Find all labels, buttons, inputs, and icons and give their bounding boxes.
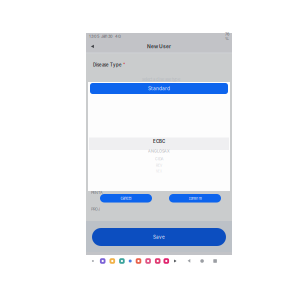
button[interactable]: App bbox=[145, 258, 151, 264]
staticText: PENTA bbox=[91, 190, 103, 195]
button[interactable]: cancel bbox=[100, 194, 152, 202]
button[interactable]: Back bbox=[87, 41, 98, 51]
button[interactable]: App bbox=[109, 258, 115, 264]
staticText: NEX bbox=[156, 170, 162, 173]
button[interactable]: App bbox=[136, 258, 141, 264]
staticText: PROJ bbox=[91, 207, 100, 211]
staticText: ECBC bbox=[153, 139, 165, 144]
staticText: select a disease type bbox=[142, 77, 180, 82]
staticText: 76% bbox=[225, 32, 229, 41]
button[interactable]: Home bbox=[198, 256, 206, 266]
button[interactable]: Save bbox=[92, 228, 226, 246]
staticText: 13:05 Jan 30 4G bbox=[89, 34, 121, 39]
staticText: CIDA bbox=[155, 157, 163, 161]
button[interactable]: App bbox=[100, 258, 105, 264]
staticText: * bbox=[123, 62, 125, 68]
staticText: Save bbox=[153, 234, 165, 240]
button[interactable]: App bbox=[119, 258, 125, 264]
button[interactable]: App bbox=[155, 258, 160, 264]
staticText: Disease Type bbox=[93, 62, 123, 68]
button[interactable]: App bbox=[163, 258, 169, 264]
staticText: New User bbox=[147, 43, 171, 49]
button[interactable]: Back bbox=[185, 256, 193, 266]
button[interactable]: confirm bbox=[169, 194, 221, 202]
staticText: ANGLOSAX bbox=[148, 149, 170, 153]
button[interactable]: Recents bbox=[211, 256, 219, 266]
button[interactable]: Standard bbox=[90, 83, 228, 94]
staticText: REV bbox=[156, 164, 162, 167]
staticText: Standard bbox=[148, 86, 170, 91]
staticText: confirm bbox=[188, 196, 201, 201]
staticText: cancel bbox=[120, 196, 131, 201]
